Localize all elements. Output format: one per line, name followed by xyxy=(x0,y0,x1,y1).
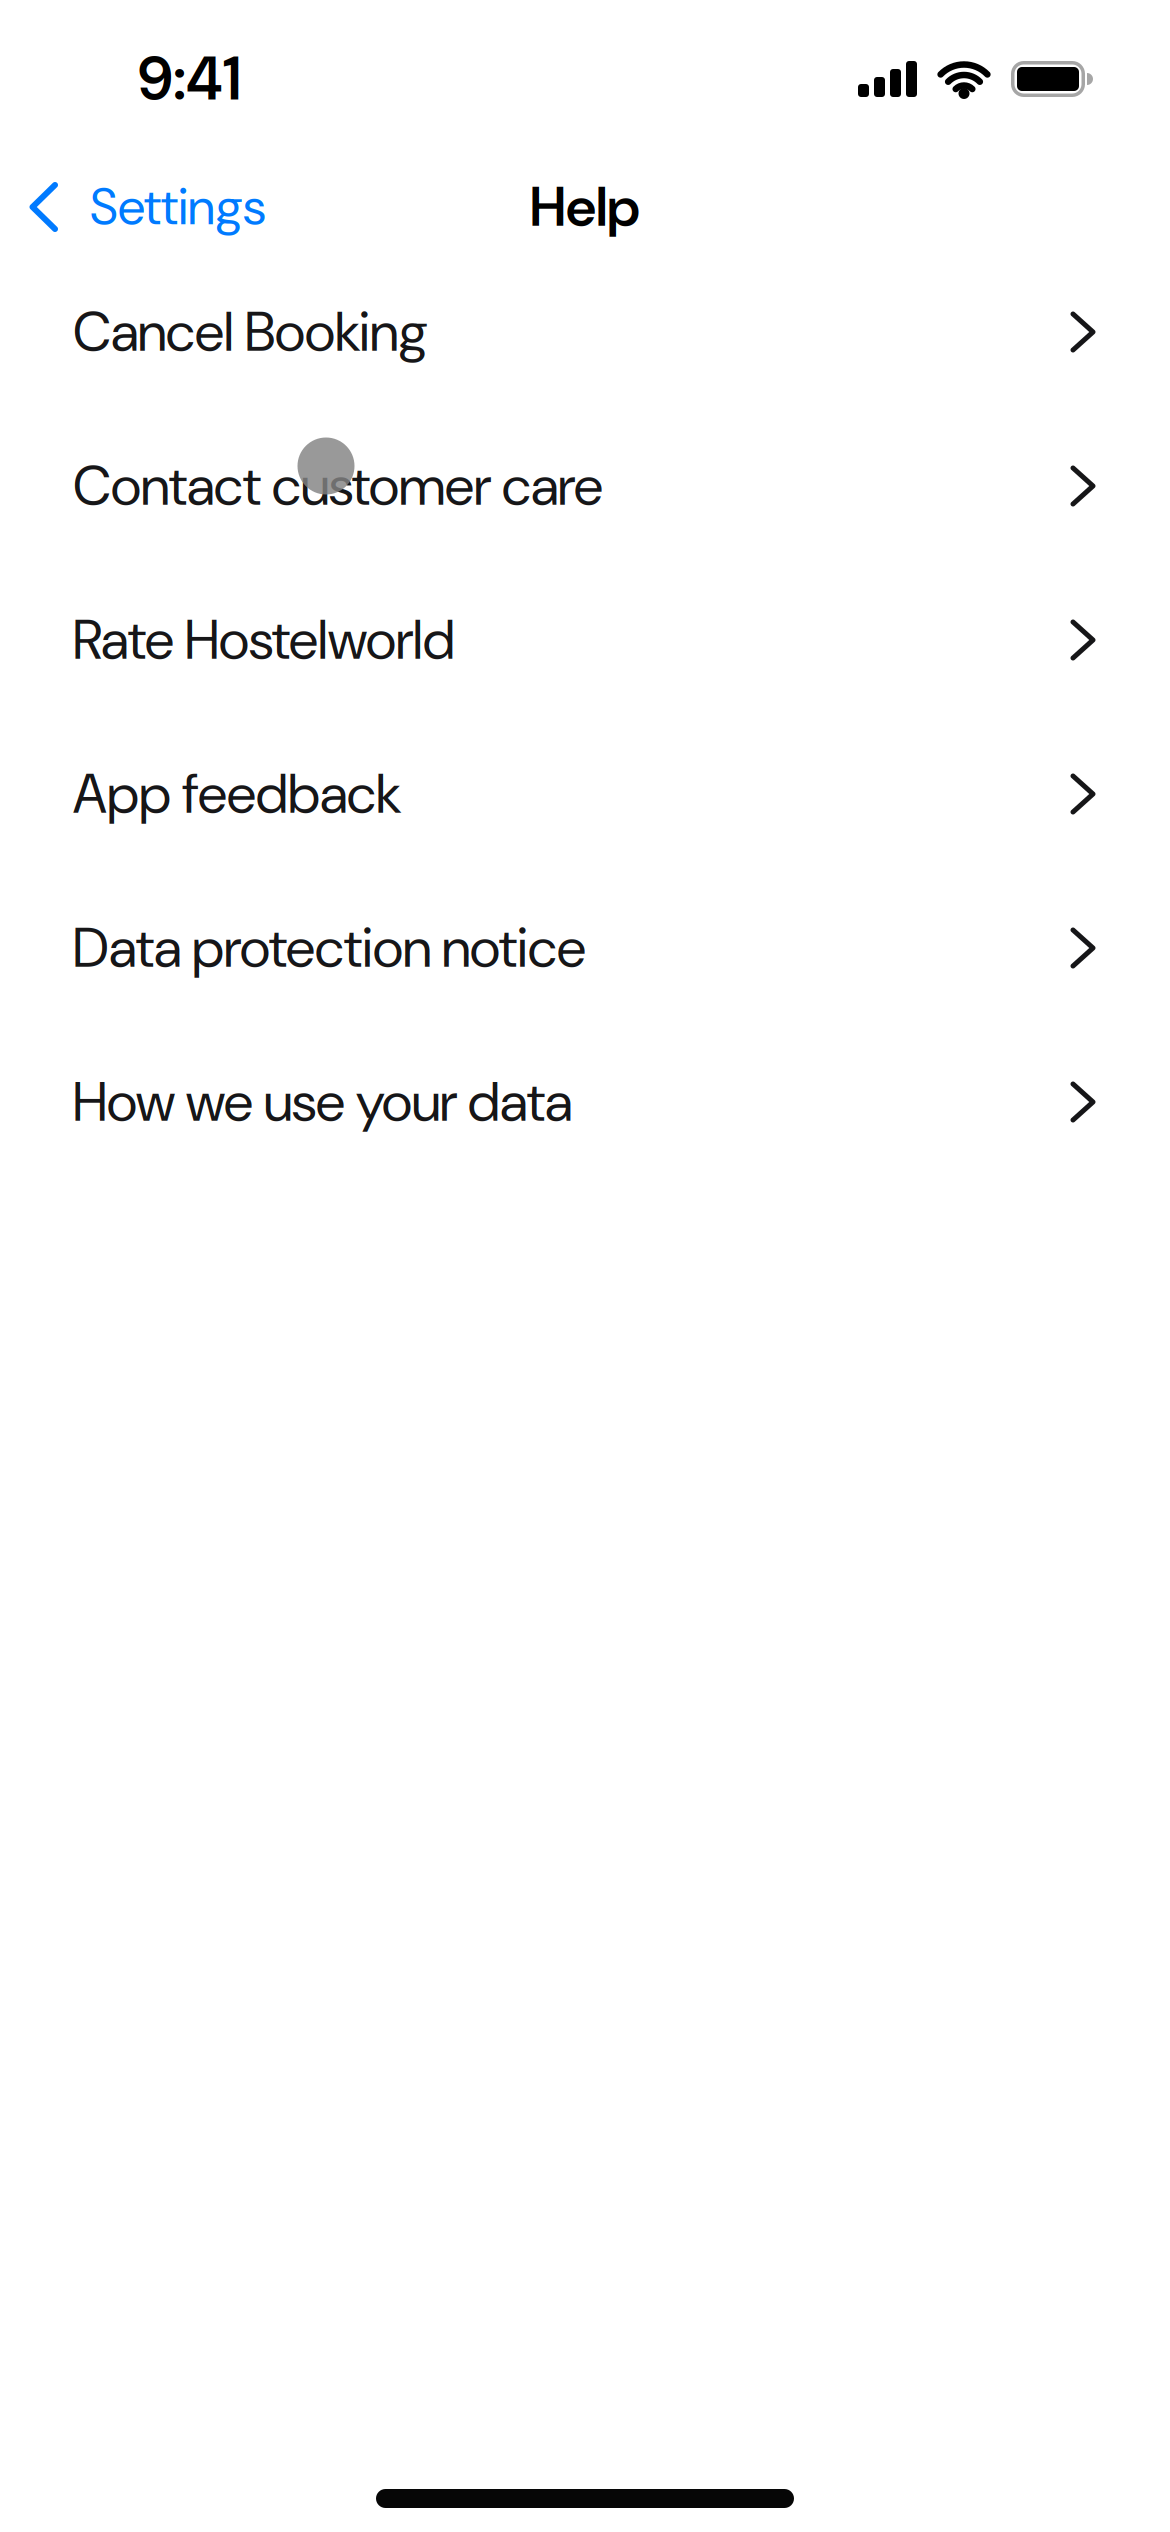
button[interactable]: Data protection notice xyxy=(0,871,1170,1025)
button[interactable]: Cancel Booking xyxy=(0,255,1170,409)
staticText: Contact customer care xyxy=(73,450,603,522)
staticText: App feedback xyxy=(73,758,402,830)
staticText: 9:41 xyxy=(138,40,241,118)
staticText: Settings xyxy=(90,174,266,240)
button[interactable]: Settings xyxy=(0,174,266,240)
staticText: How we use your data xyxy=(73,1066,572,1138)
staticText: Data protection notice xyxy=(73,912,586,984)
button[interactable]: Rate Hostelworld xyxy=(0,563,1170,717)
button[interactable]: Contact customer care xyxy=(0,409,1170,563)
button[interactable]: How we use your data xyxy=(0,1025,1170,1179)
staticText: Help xyxy=(530,171,640,243)
staticText: Rate Hostelworld xyxy=(73,604,455,676)
button[interactable]: App feedback xyxy=(0,717,1170,871)
staticText: Cancel Booking xyxy=(73,296,428,368)
